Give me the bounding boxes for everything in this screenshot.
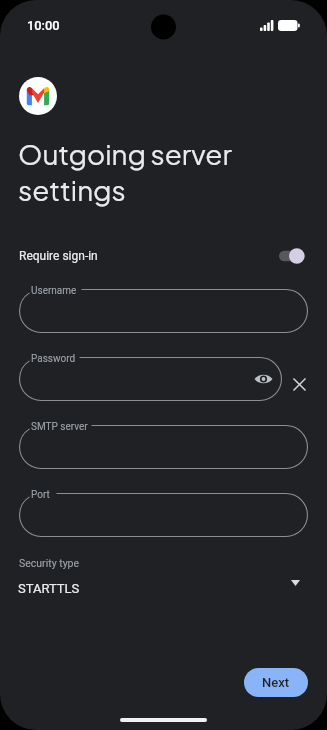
staticText: SMTP server bbox=[31, 421, 88, 433]
button[interactable]: Show password bbox=[252, 368, 274, 390]
staticText: Username bbox=[31, 285, 77, 297]
button[interactable]: Security type bbox=[0, 550, 327, 602]
button[interactable]: Port bbox=[19, 493, 308, 537]
staticText: Next bbox=[262, 675, 290, 690]
staticText: 10:00 bbox=[27, 18, 60, 33]
button[interactable]: Password bbox=[19, 357, 282, 401]
staticText: Security type bbox=[19, 557, 80, 569]
staticText: Password bbox=[31, 353, 76, 365]
button[interactable]: Require sign-in bbox=[0, 240, 327, 272]
button[interactable]: Next bbox=[244, 668, 308, 697]
button[interactable]: Username bbox=[19, 289, 308, 333]
staticText: STARTTLS bbox=[18, 581, 80, 596]
button[interactable]: Clear password bbox=[286, 371, 312, 397]
staticText: Outgoing server settings bbox=[18, 136, 232, 207]
staticText: Port bbox=[31, 489, 50, 501]
button[interactable]: Require sign-in toggle bbox=[279, 247, 305, 265]
button[interactable]: SMTP server bbox=[19, 425, 308, 469]
staticText: Require sign-in bbox=[19, 249, 98, 263]
